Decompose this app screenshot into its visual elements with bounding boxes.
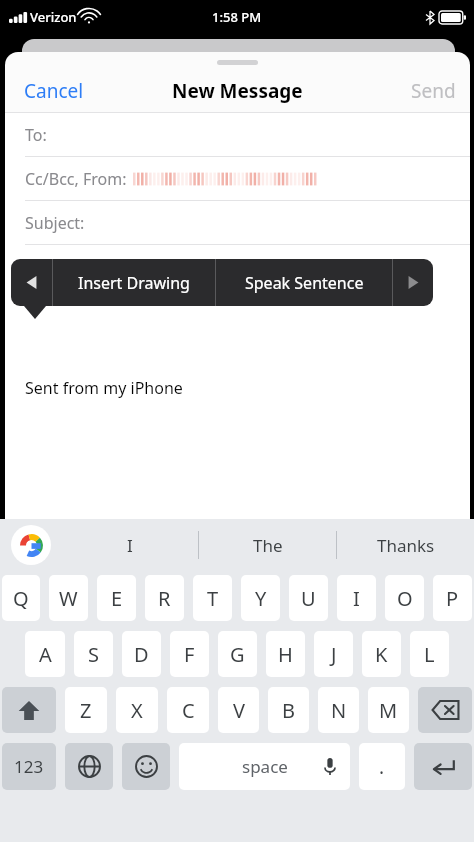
button[interactable]: Google xyxy=(11,525,51,565)
button[interactable]: L xyxy=(410,631,449,677)
button[interactable]: space xyxy=(179,743,350,790)
staticText: 1:58 PM xyxy=(212,8,262,26)
button[interactable]: R xyxy=(145,575,184,621)
staticText: O xyxy=(397,585,413,612)
staticText: I xyxy=(353,585,360,612)
button[interactable]: S xyxy=(74,631,113,677)
staticText: Send xyxy=(411,78,456,104)
button[interactable]: C xyxy=(167,687,209,733)
staticText: J xyxy=(331,641,337,668)
staticText: Sent from my iPhone xyxy=(25,377,183,399)
staticText: To: xyxy=(25,124,47,146)
staticText: G xyxy=(230,641,245,668)
staticText: 123 xyxy=(14,755,44,778)
staticText: To find the treasure, you have to start … xyxy=(25,255,432,275)
button[interactable]: Change language xyxy=(65,743,113,790)
staticText: K xyxy=(375,641,388,668)
staticText: R xyxy=(158,585,171,612)
button[interactable]: T xyxy=(193,575,232,621)
button[interactable]: B xyxy=(268,687,309,733)
button[interactable]: Speak Sentence xyxy=(216,259,392,306)
staticText: T xyxy=(207,585,219,612)
staticText: Subject: xyxy=(25,212,85,234)
button[interactable]: N xyxy=(318,687,359,733)
staticText: The xyxy=(253,534,283,557)
button[interactable]: Emoji xyxy=(122,743,170,790)
button[interactable]: P xyxy=(433,575,472,621)
staticText: Thanks xyxy=(377,534,435,557)
staticText: Y xyxy=(255,585,267,612)
button[interactable]: Next xyxy=(393,259,433,306)
button[interactable]: M xyxy=(368,687,409,733)
button[interactable]: Y xyxy=(241,575,280,621)
button[interactable]: E xyxy=(97,575,136,621)
staticText: Cc/Bcc, From: xyxy=(25,168,127,190)
button[interactable]: Cc/Bcc, From: xyxy=(5,157,470,201)
staticText: . xyxy=(379,754,385,780)
button[interactable]: A xyxy=(25,631,65,677)
staticText: Z xyxy=(80,697,92,724)
staticText: E xyxy=(111,585,123,612)
staticText: Speak Sentence xyxy=(245,272,364,294)
staticText: I xyxy=(127,534,133,557)
button[interactable]: Q xyxy=(2,575,40,621)
staticText: L xyxy=(424,641,435,668)
button[interactable]: W xyxy=(49,575,88,621)
button[interactable]: Thanks xyxy=(337,519,474,571)
staticText: Q xyxy=(13,585,29,612)
staticText: N xyxy=(331,697,347,724)
staticText: New Message xyxy=(172,78,303,104)
button[interactable]: F xyxy=(170,631,209,677)
button[interactable]: Enter xyxy=(414,743,472,790)
button[interactable]: H xyxy=(266,631,305,677)
staticText: D xyxy=(134,641,149,668)
button[interactable]: K xyxy=(362,631,401,677)
button[interactable]: . xyxy=(359,743,405,790)
button[interactable]: Cancel xyxy=(5,72,98,110)
button[interactable]: Z xyxy=(65,687,107,733)
button[interactable]: Shift xyxy=(2,687,56,733)
staticText: U xyxy=(301,585,316,612)
button[interactable]: Insert Drawing xyxy=(53,259,215,306)
staticText: H xyxy=(278,641,293,668)
button[interactable]: O xyxy=(385,575,424,621)
staticText: C xyxy=(182,697,195,724)
staticText: F xyxy=(184,641,195,668)
button[interactable]: Send xyxy=(397,72,470,110)
staticText: M xyxy=(379,697,398,724)
staticText: X xyxy=(131,697,143,724)
staticText: Cancel xyxy=(24,78,84,104)
staticText: space xyxy=(242,755,288,778)
button[interactable]: I xyxy=(62,519,198,571)
button[interactable]: Previous xyxy=(11,259,52,306)
staticText: P xyxy=(446,585,459,612)
staticText: B xyxy=(282,697,295,724)
button[interactable]: D xyxy=(122,631,161,677)
button[interactable]: The xyxy=(199,519,336,571)
button[interactable]: V xyxy=(218,687,259,733)
staticText: A xyxy=(39,641,52,668)
button[interactable]: G xyxy=(218,631,257,677)
button[interactable]: Backspace xyxy=(418,687,472,733)
staticText: W xyxy=(59,585,78,612)
staticText: S xyxy=(88,641,99,668)
staticText: Verizon xyxy=(30,8,77,26)
staticText: Insert Drawing xyxy=(78,272,190,294)
button[interactable]: X xyxy=(116,687,158,733)
staticText: V xyxy=(233,697,245,724)
button[interactable]: Subject: xyxy=(5,201,470,245)
button[interactable]: 123 xyxy=(2,743,56,790)
button[interactable]: I xyxy=(337,575,376,621)
button[interactable]: To: xyxy=(5,113,470,157)
button[interactable]: J xyxy=(314,631,353,677)
button[interactable]: U xyxy=(289,575,328,621)
